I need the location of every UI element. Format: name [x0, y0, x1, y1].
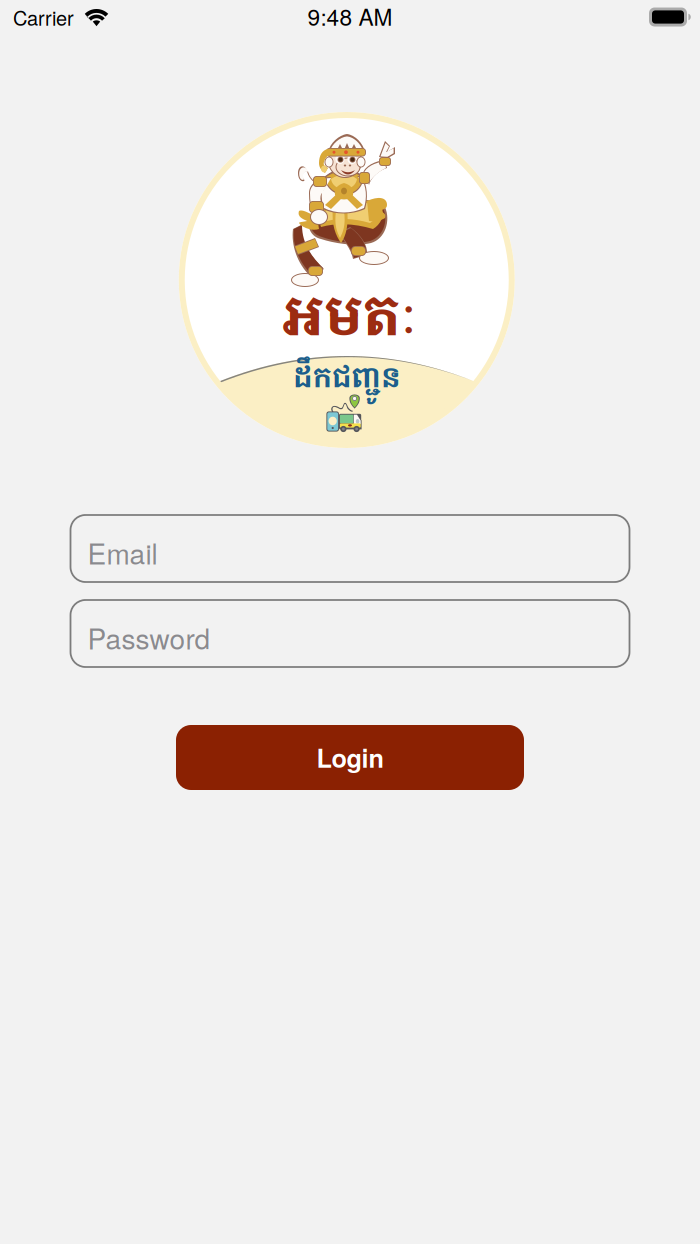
button[interactable]: Email — [70, 515, 629, 582]
staticText: Password — [87, 617, 210, 658]
staticText: 9:48 AM — [307, 0, 392, 32]
staticText: ដឹកជញ្ជូន — [293, 357, 401, 395]
button[interactable]: Login — [176, 725, 524, 790]
staticText: Login — [316, 739, 383, 776]
staticText: Email — [87, 532, 157, 573]
button[interactable]: Password — [70, 600, 629, 667]
staticText: អមតៈ — [282, 275, 416, 352]
staticText: Carrier — [13, 3, 74, 31]
